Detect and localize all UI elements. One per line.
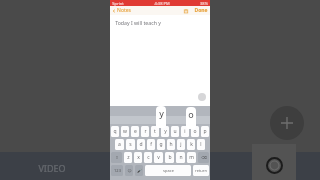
staticText: k bbox=[190, 141, 193, 148]
button[interactable]: ☺ bbox=[125, 165, 133, 176]
staticText: return bbox=[195, 168, 207, 173]
button[interactable]: 123 bbox=[111, 165, 123, 176]
staticText: p bbox=[203, 128, 207, 135]
button[interactable]: l bbox=[197, 139, 205, 150]
button[interactable]: s bbox=[126, 139, 135, 150]
button[interactable]: 🎤 bbox=[135, 165, 143, 176]
button[interactable]: ⇧ bbox=[111, 152, 122, 163]
staticText: Today I will teach y bbox=[115, 19, 161, 26]
staticText: h bbox=[169, 141, 173, 148]
button[interactable]: u bbox=[171, 126, 179, 137]
staticText: y bbox=[159, 107, 164, 119]
button[interactable]: VIDEO bbox=[38, 162, 66, 174]
button[interactable]: g bbox=[157, 139, 165, 150]
staticText: b bbox=[168, 154, 172, 161]
staticText: o bbox=[193, 128, 197, 135]
staticText: g bbox=[159, 141, 163, 148]
button[interactable]: ⌫ bbox=[198, 152, 209, 163]
staticText: Notes bbox=[117, 7, 131, 14]
staticText: d bbox=[139, 141, 143, 148]
button[interactable]: return bbox=[193, 165, 209, 176]
staticText: r bbox=[144, 128, 147, 135]
button[interactable]: i bbox=[181, 126, 189, 137]
staticText: ⌫ bbox=[201, 155, 207, 160]
button[interactable]: p bbox=[201, 126, 209, 137]
staticText: e bbox=[134, 128, 137, 135]
staticText: VIDEO bbox=[38, 162, 66, 174]
button[interactable]: Share bbox=[183, 8, 189, 14]
staticText: ⇧ bbox=[115, 155, 119, 160]
button[interactable]: Notes bbox=[110, 7, 133, 14]
button[interactable]: c bbox=[144, 152, 152, 163]
button[interactable]: a bbox=[115, 139, 124, 150]
staticText: f bbox=[150, 141, 152, 148]
staticText: o bbox=[188, 108, 194, 120]
staticText: s bbox=[129, 141, 132, 148]
button[interactable]: n bbox=[176, 152, 185, 163]
button[interactable]: Add bbox=[270, 106, 304, 140]
button[interactable]: v bbox=[154, 152, 163, 163]
staticText: m bbox=[189, 154, 194, 161]
button[interactable]: Record bbox=[266, 157, 283, 174]
staticText: 4:38 PM bbox=[154, 1, 170, 6]
button[interactable]: d bbox=[137, 139, 145, 150]
staticText: v bbox=[157, 154, 160, 161]
button[interactable]: h bbox=[167, 139, 175, 150]
button[interactable]: Hide keyboard bbox=[198, 93, 206, 101]
button[interactable]: Done bbox=[192, 7, 210, 14]
button[interactable]: q bbox=[111, 126, 119, 137]
staticText: x bbox=[137, 154, 140, 161]
staticText: a bbox=[118, 141, 121, 148]
staticText: 🎤 bbox=[137, 168, 142, 173]
staticText: q bbox=[113, 128, 117, 135]
staticText: 123 bbox=[114, 168, 121, 173]
button[interactable]: space bbox=[145, 165, 191, 176]
staticText: w bbox=[123, 128, 127, 135]
button[interactable]: f bbox=[147, 139, 155, 150]
staticText: Done bbox=[194, 7, 208, 14]
button[interactable]: k bbox=[187, 139, 195, 150]
staticText: t bbox=[154, 128, 156, 135]
staticText: Sprint bbox=[112, 1, 124, 6]
staticText: y bbox=[164, 128, 167, 135]
button[interactable]: z bbox=[124, 152, 132, 163]
staticText: l bbox=[200, 141, 202, 148]
staticText: space bbox=[163, 168, 174, 173]
button[interactable]: x bbox=[134, 152, 142, 163]
button[interactable]: b bbox=[165, 152, 174, 163]
button[interactable]: y bbox=[161, 126, 169, 137]
button[interactable]: o bbox=[191, 126, 199, 137]
staticText: n bbox=[179, 154, 183, 161]
staticText: ☺ bbox=[127, 168, 132, 173]
button[interactable]: m bbox=[187, 152, 196, 163]
staticText: z bbox=[127, 154, 130, 161]
staticText: j bbox=[180, 141, 182, 148]
button[interactable]: r bbox=[141, 126, 149, 137]
button[interactable]: e bbox=[131, 126, 139, 137]
button[interactable]: j bbox=[177, 139, 185, 150]
staticText: i bbox=[184, 128, 186, 135]
button[interactable]: t bbox=[151, 126, 159, 137]
staticText: u bbox=[173, 128, 177, 135]
staticText: 38% bbox=[200, 1, 208, 6]
button[interactable]: w bbox=[121, 126, 129, 137]
staticText: c bbox=[147, 154, 150, 161]
